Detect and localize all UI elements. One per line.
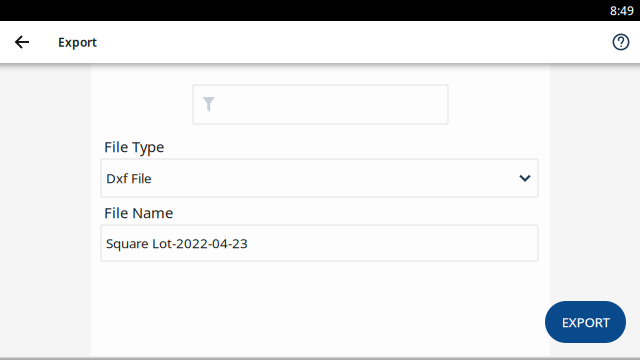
button[interactable]: EXPORT	[545, 301, 626, 343]
staticText: EXPORT	[561, 313, 609, 331]
button[interactable]: Square Lot-2022-04-23	[101, 225, 538, 261]
button[interactable]: Back	[0, 21, 44, 63]
button[interactable]: Help	[602, 21, 640, 63]
button[interactable]: Dxf File	[101, 159, 538, 197]
staticText: 8:49	[610, 2, 634, 18]
staticText: Dxf File	[106, 169, 152, 187]
staticText: File Name	[104, 203, 173, 222]
staticText: Square Lot-2022-04-23	[106, 234, 248, 252]
button[interactable]: Filter	[193, 85, 448, 124]
staticText: File Type	[104, 137, 164, 156]
staticText: Export	[58, 34, 97, 50]
